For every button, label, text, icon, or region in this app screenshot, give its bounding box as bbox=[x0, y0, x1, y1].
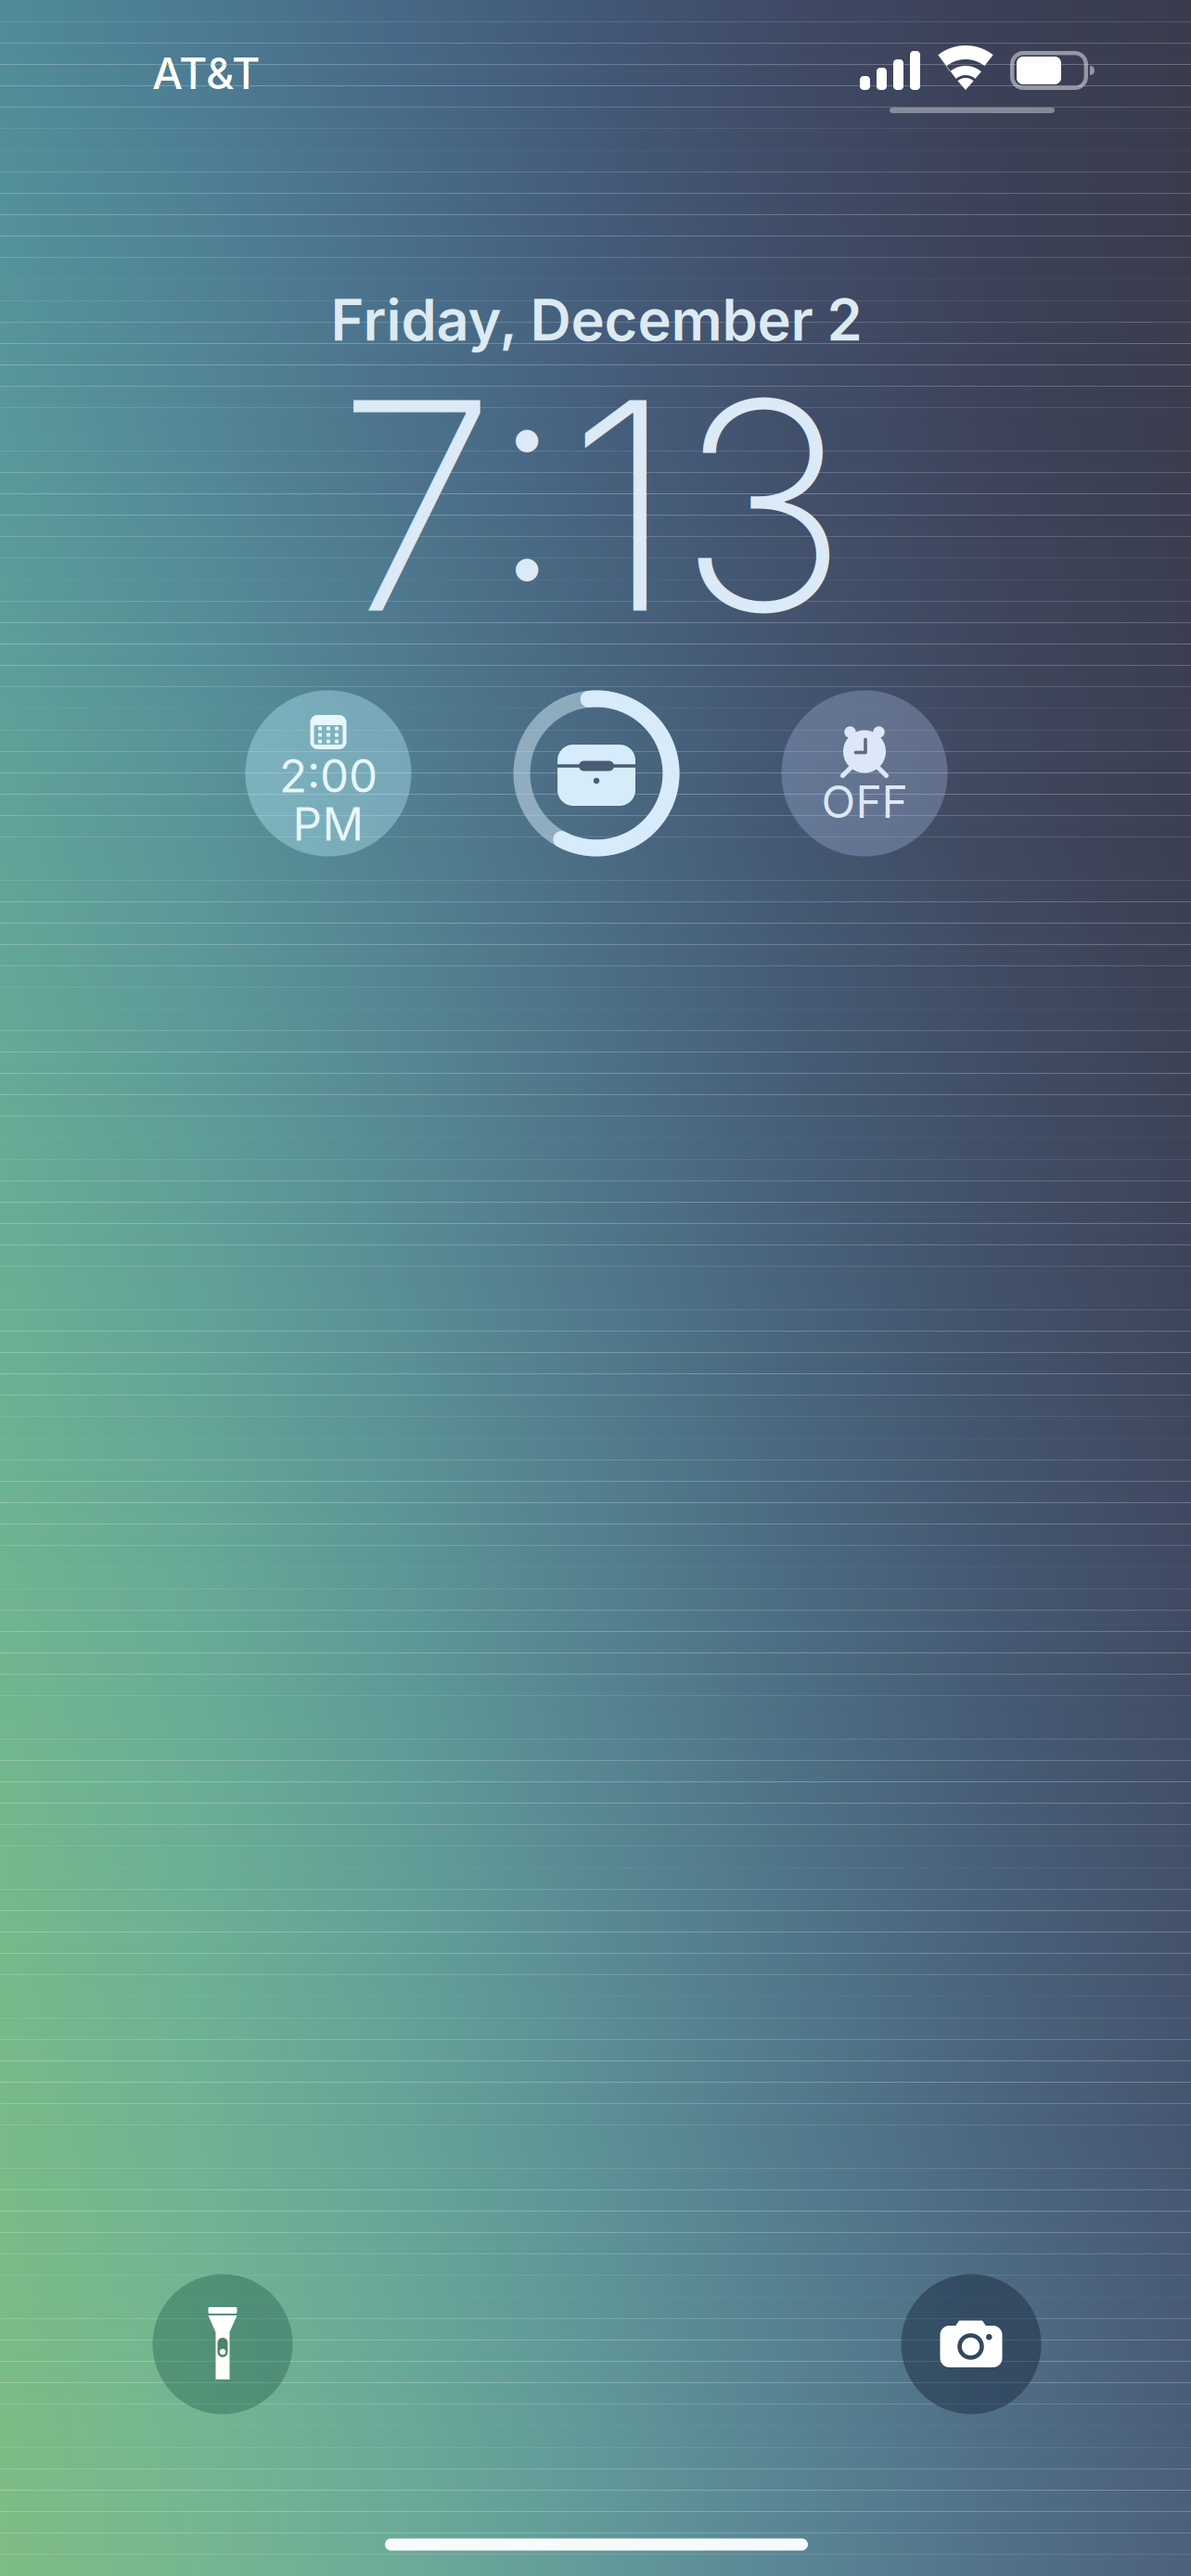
staticText: 7:13 bbox=[337, 330, 849, 680]
staticText: OFF bbox=[821, 775, 908, 829]
button[interactable]: Camera bbox=[901, 2274, 1041, 2414]
staticText: PM bbox=[293, 796, 364, 852]
button[interactable]: AirPods battery bbox=[513, 690, 679, 856]
staticText: AT&T bbox=[152, 47, 260, 99]
staticText: 2:00 bbox=[279, 748, 378, 803]
button[interactable]: Flashlight bbox=[153, 2274, 293, 2414]
staticText: Friday, December 2 bbox=[331, 286, 862, 354]
button[interactable]: Alarm off bbox=[781, 690, 948, 856]
button[interactable]: Calendar, 2:00 PM bbox=[245, 690, 411, 856]
